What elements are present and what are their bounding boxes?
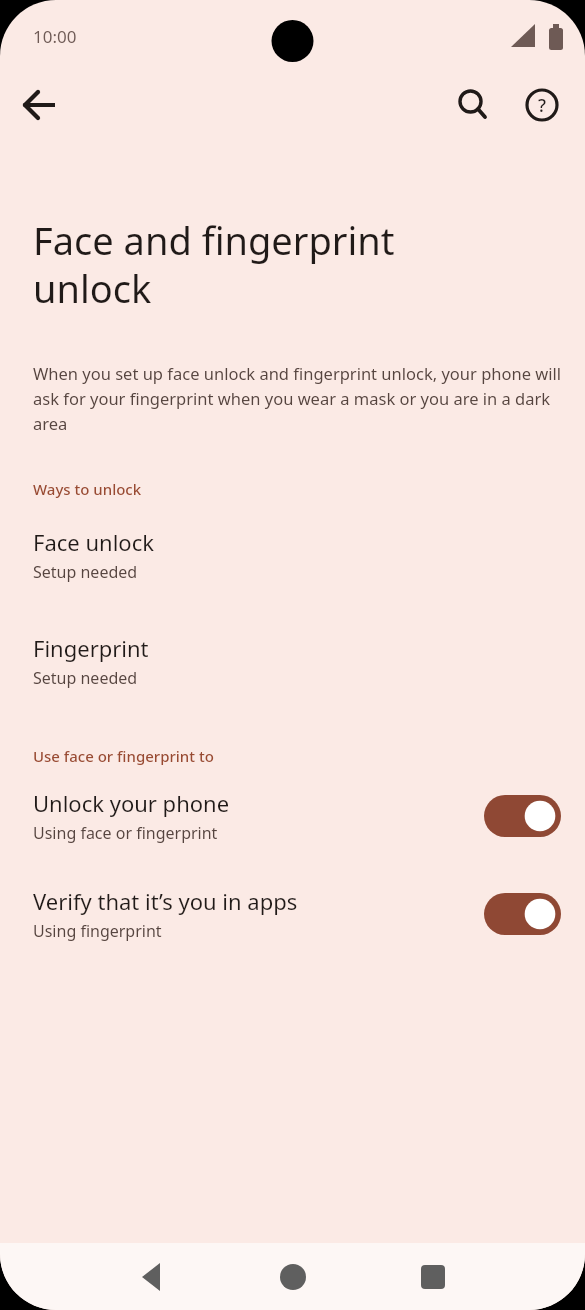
staticText: Setup needed <box>33 561 138 583</box>
button[interactable]: Face unlock <box>0 527 585 583</box>
button[interactable]: Fingerprint <box>0 633 585 689</box>
button[interactable]: Navigate up <box>14 79 66 131</box>
staticText: Face and fingerprint unlock <box>33 214 395 314</box>
button[interactable]: Recent apps <box>409 1253 457 1301</box>
staticText: ? <box>538 93 547 118</box>
staticText: 10:00 <box>33 25 77 48</box>
staticText: Ways to unlock <box>33 479 142 499</box>
button[interactable]: Home <box>269 1253 317 1301</box>
button[interactable]: Back <box>128 1253 176 1301</box>
button[interactable]: Verify that it’s you in apps toggle, on <box>484 893 561 935</box>
staticText: When you set up face unlock and fingerpr… <box>33 362 563 435</box>
button[interactable]: Unlock your phone toggle, on <box>484 795 561 837</box>
staticText: Face unlock <box>33 527 154 557</box>
staticText: Verify that it’s you in apps <box>33 886 298 916</box>
staticText: Using fingerprint <box>33 920 162 942</box>
button[interactable]: Search <box>447 79 499 131</box>
button[interactable]: Verify that it’s you in apps <box>0 886 585 942</box>
staticText: Fingerprint <box>33 633 149 663</box>
button[interactable]: Help <box>516 79 568 131</box>
staticText: Setup needed <box>33 667 138 689</box>
button[interactable]: Unlock your phone <box>0 788 585 844</box>
staticText: Using face or fingerprint <box>33 822 218 844</box>
staticText: Use face or fingerprint to <box>33 746 214 766</box>
staticText: Unlock your phone <box>33 788 230 818</box>
